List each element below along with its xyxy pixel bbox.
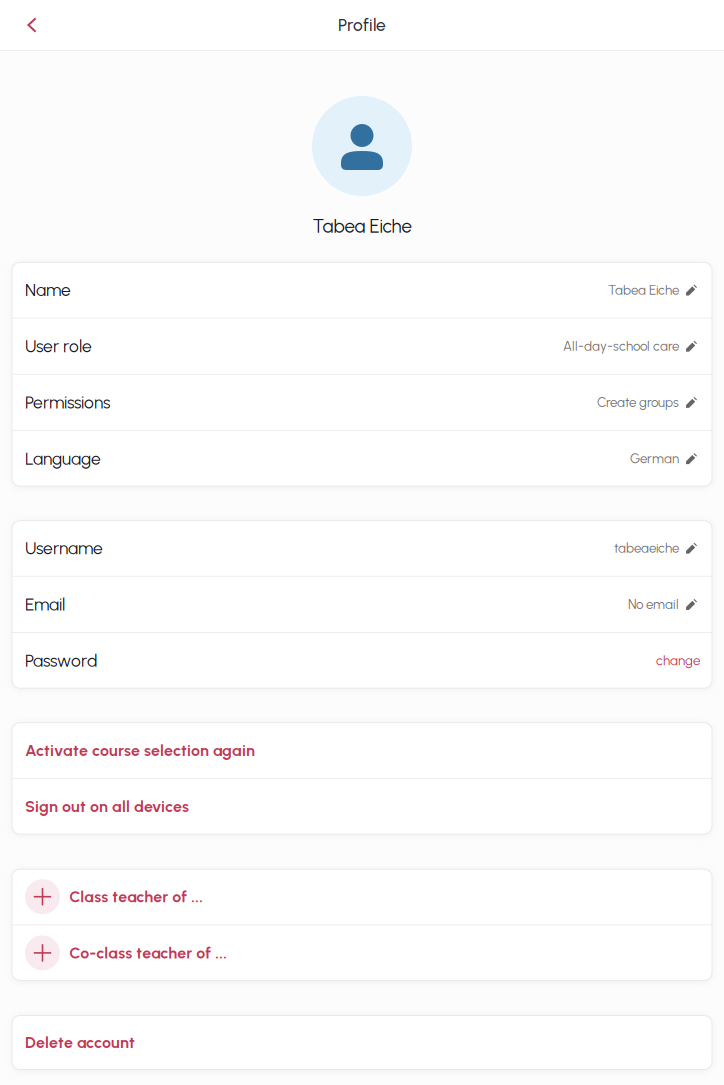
button[interactable]: Password — [12, 633, 712, 688]
staticText: Create groups — [597, 394, 679, 410]
button[interactable]: User role — [12, 319, 712, 374]
button[interactable]: Back — [0, 0, 59, 50]
staticText: Username — [25, 538, 103, 559]
staticText: Password — [25, 650, 97, 671]
staticText: Tabea Eiche — [312, 215, 411, 237]
button[interactable]: Name — [12, 262, 712, 318]
button[interactable]: Username — [12, 521, 712, 576]
button[interactable]: Email — [12, 577, 712, 632]
button[interactable]: Activate course selection again — [12, 723, 712, 778]
staticText: No email — [628, 596, 679, 612]
staticText: Profile — [338, 15, 386, 35]
button[interactable]: Language — [12, 431, 712, 486]
button[interactable]: Sign out on all devices — [12, 779, 712, 834]
staticText: German — [630, 451, 679, 467]
staticText: Delete account — [25, 1033, 135, 1052]
button[interactable]: Co-class teacher of ... — [12, 925, 712, 980]
staticText: Name — [25, 280, 71, 300]
staticText: change — [656, 653, 700, 669]
staticText: Email — [25, 594, 65, 615]
staticText: Class teacher of ... — [69, 887, 203, 906]
staticText: Tabea Eiche — [608, 282, 679, 298]
button[interactable]: Class teacher of ... — [12, 869, 712, 924]
button[interactable]: Permissions — [12, 375, 712, 430]
staticText: Co-class teacher of ... — [69, 943, 227, 962]
staticText: User role — [25, 336, 92, 357]
staticText: Sign out on all devices — [25, 797, 189, 816]
staticText: All-day-school care — [563, 338, 679, 354]
staticText: tabeaeiche — [614, 540, 679, 556]
staticText: Language — [25, 448, 101, 469]
button[interactable]: Delete account — [12, 1015, 712, 1069]
staticText: Activate course selection again — [25, 741, 255, 760]
staticText: Permissions — [25, 392, 110, 413]
